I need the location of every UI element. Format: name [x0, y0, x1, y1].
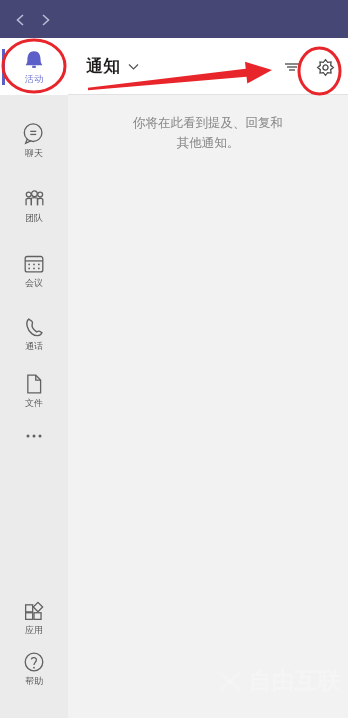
staticText: 文件 — [25, 397, 43, 408]
staticText: 通话 — [25, 340, 43, 351]
button[interactable]: 活动 — [0, 38, 68, 95]
button[interactable]: 应用 — [0, 596, 68, 639]
button[interactable]: 文件 — [0, 369, 68, 412]
button[interactable]: Settings — [310, 52, 340, 82]
button[interactable]: Filter — [278, 53, 306, 81]
button[interactable]: Back — [8, 8, 32, 32]
button[interactable]: 聊天 — [0, 119, 68, 162]
staticText: 活动 — [25, 73, 43, 84]
staticText: 通知 — [86, 56, 120, 77]
staticText: 应用 — [25, 624, 43, 635]
staticText: 聊天 — [25, 147, 43, 158]
button[interactable]: More — [0, 412, 68, 460]
button[interactable]: 团队 — [0, 184, 68, 227]
button[interactable]: Forward — [34, 8, 58, 32]
button[interactable]: 通话 — [0, 312, 68, 355]
button[interactable]: 会议 — [0, 249, 68, 292]
button[interactable]: 帮助 — [0, 647, 68, 690]
staticText: 帮助 — [25, 675, 43, 686]
staticText: 你将在此看到提及、回复和 其他通知。 — [94, 115, 322, 151]
staticText: 团队 — [25, 212, 43, 223]
staticText: 会议 — [25, 277, 43, 288]
button[interactable]: 通知 — [86, 56, 140, 77]
